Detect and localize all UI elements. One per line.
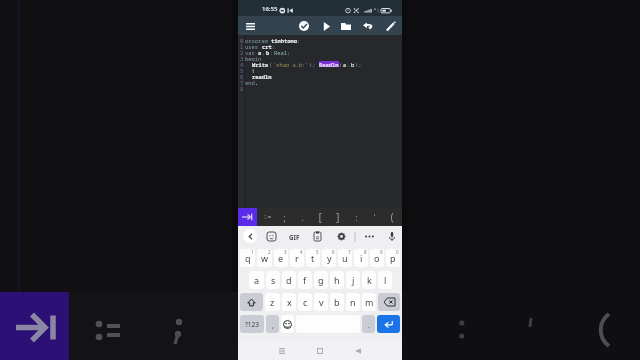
button[interactable]: m (362, 293, 376, 311)
button[interactable]: . (293, 208, 311, 226)
staticText: e (278, 252, 284, 264)
staticText: j (352, 274, 355, 286)
button[interactable]: a (249, 271, 264, 289)
staticText: 2 (240, 49, 244, 55)
button[interactable]: Shift (240, 293, 263, 311)
button[interactable]: t (306, 249, 320, 267)
button[interactable]: z (265, 293, 280, 311)
staticText: 0 (396, 249, 399, 255)
staticText: z (270, 296, 275, 308)
staticText: . (255, 79, 259, 85)
button[interactable]: Compile (297, 19, 311, 33)
button[interactable]: u (338, 249, 352, 267)
staticText: q (245, 252, 251, 264)
button[interactable]: n (346, 293, 360, 311)
button[interactable]: , (266, 315, 279, 333)
staticText: o (374, 252, 380, 264)
button[interactable]: q (240, 249, 255, 267)
staticText: ; (297, 37, 301, 43)
staticText: | (245, 67, 255, 73)
button[interactable]: Run (319, 19, 333, 33)
button[interactable]: Edit (383, 19, 397, 33)
button[interactable]: w (257, 249, 272, 267)
staticText: 8 (240, 85, 244, 91)
button[interactable]: r (290, 249, 304, 267)
button[interactable]: := (258, 208, 276, 226)
button[interactable]: Emoji (281, 315, 294, 333)
button[interactable]: c (298, 293, 312, 311)
staticText: k (367, 274, 372, 286)
button[interactable]: y (322, 249, 336, 267)
button[interactable]: Undo (361, 19, 375, 33)
button[interactable]: d (282, 271, 296, 289)
staticText: c (303, 296, 308, 308)
button[interactable]: ' (365, 208, 383, 226)
staticText: y (327, 252, 332, 264)
staticText: g (318, 274, 324, 286)
staticText: t (311, 252, 315, 264)
staticText: readln (252, 73, 272, 79)
staticText: 7 (240, 79, 244, 85)
button[interactable]: ; (275, 208, 293, 226)
button[interactable]: h (330, 271, 344, 289)
staticText: ; (282, 212, 287, 223)
button[interactable]: l (378, 271, 392, 289)
staticText: 5 (316, 249, 319, 255)
staticText: a (343, 61, 347, 67)
button[interactable]: : (347, 208, 365, 226)
button[interactable]: Enter (377, 315, 400, 333)
button[interactable]: Open file (339, 19, 353, 33)
staticText: a (258, 49, 262, 55)
button[interactable]: Back (349, 342, 367, 360)
staticText: ); (309, 61, 319, 67)
button[interactable]: v (314, 293, 328, 311)
button[interactable]: x (282, 293, 296, 311)
button[interactable]: o (370, 249, 384, 267)
staticText: 3 (284, 249, 287, 255)
staticText: 9 (380, 249, 383, 255)
button[interactable]: p (386, 249, 400, 267)
button[interactable]: i (354, 249, 368, 267)
button[interactable]: Home (311, 342, 329, 360)
staticText: := (263, 212, 272, 222)
button[interactable]: ( (383, 208, 401, 226)
button[interactable]: Menu (243, 19, 257, 33)
button[interactable]: Symbols (240, 315, 264, 333)
button[interactable]: e (274, 249, 288, 267)
button[interactable]: Stickers (265, 230, 277, 242)
staticText: uses (245, 43, 262, 49)
staticText: d (286, 274, 292, 286)
button[interactable]: Recents (273, 342, 291, 360)
button[interactable]: f (298, 271, 312, 289)
staticText: n (350, 296, 356, 308)
staticText: a (254, 274, 260, 286)
button[interactable]: Voice input (386, 230, 398, 242)
staticText: . (368, 321, 370, 331)
staticText: 1 (240, 43, 244, 49)
button[interactable]: [ (311, 208, 329, 226)
button[interactable]: k (362, 271, 376, 289)
staticText: 7 (348, 249, 351, 255)
button[interactable]: Back (243, 229, 257, 243)
button[interactable]: j (346, 271, 360, 289)
button[interactable]: Tab (238, 208, 257, 226)
button[interactable]: Settings (335, 230, 347, 242)
button[interactable]: g (314, 271, 328, 289)
button[interactable]: . (362, 315, 375, 333)
staticText: m (365, 296, 374, 308)
staticText: 6 (240, 73, 244, 79)
button[interactable]: Clipboard (311, 230, 323, 242)
staticText: f (303, 274, 307, 286)
button[interactable]: s (266, 271, 280, 289)
staticText: ); (355, 61, 362, 67)
staticText: begin (245, 55, 262, 61)
button[interactable]: More options (363, 230, 375, 242)
staticText: 3 (240, 55, 244, 61)
staticText: ' (372, 212, 377, 223)
button[interactable]: b (330, 293, 344, 311)
button[interactable]: ] (329, 208, 347, 226)
button[interactable]: GIF (287, 230, 301, 244)
button[interactable]: Backspace (378, 293, 400, 311)
